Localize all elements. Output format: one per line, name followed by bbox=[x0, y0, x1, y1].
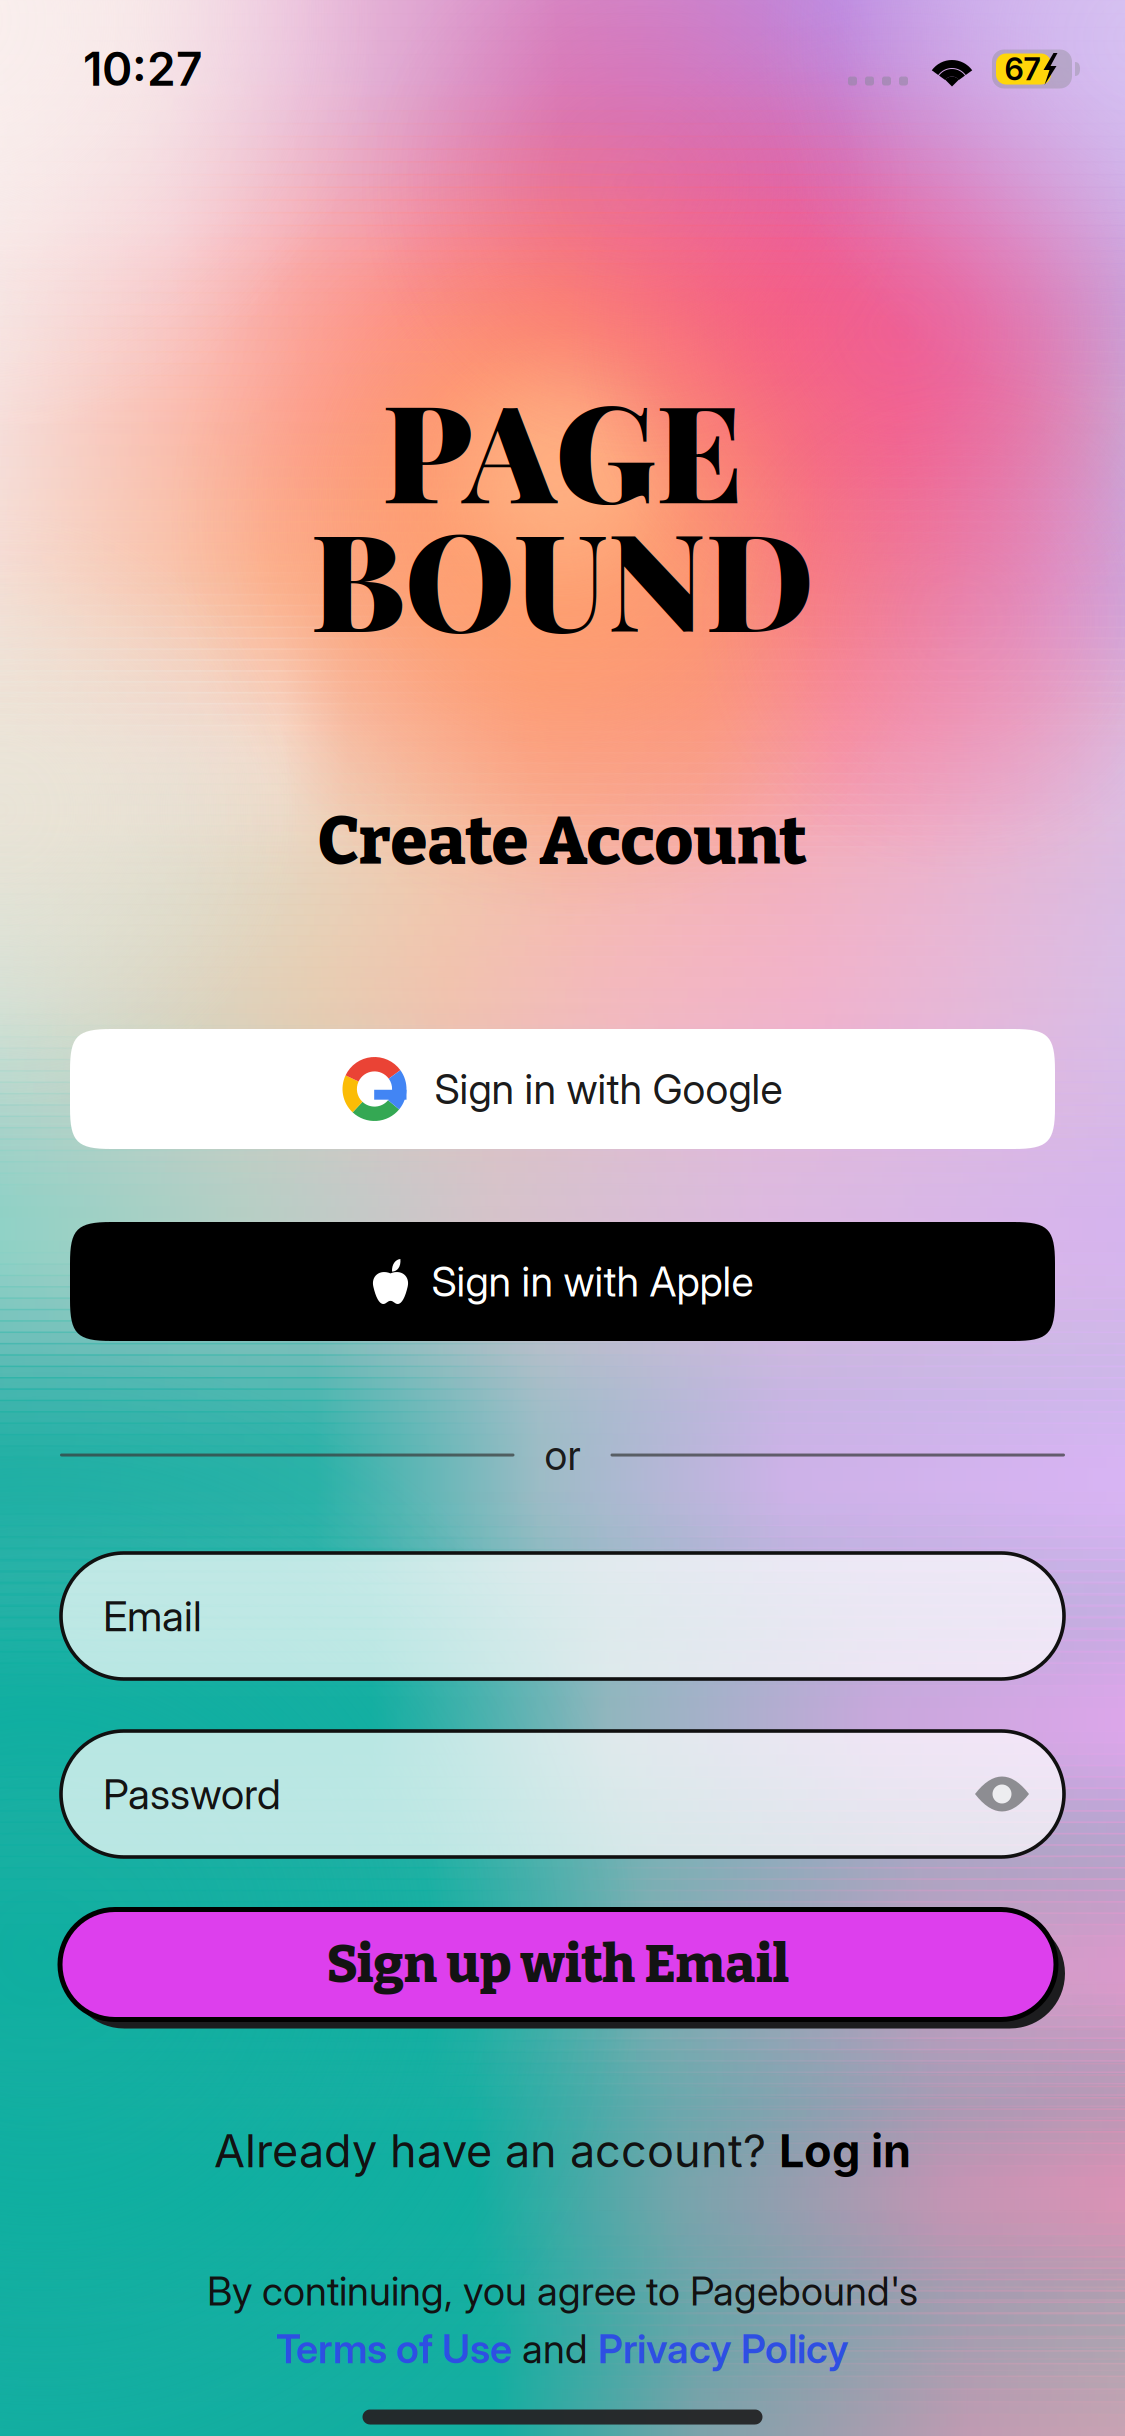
staticText: Sign in with Apple bbox=[431, 1257, 753, 1306]
button[interactable]: Privacy Policy bbox=[598, 2325, 849, 2373]
button[interactable]: Email bbox=[0, 1553, 1125, 1679]
button[interactable]: Sign in with Apple bbox=[70, 1222, 1055, 1341]
button[interactable]: Already have an account? bbox=[174, 2114, 951, 2188]
staticText: BOUND bbox=[310, 487, 814, 666]
staticText: Password bbox=[103, 1769, 281, 1819]
staticText: Sign up with Email bbox=[326, 1933, 789, 1996]
staticText: Terms of Use bbox=[276, 2325, 512, 2373]
staticText: or bbox=[544, 1430, 580, 1480]
staticText: Email bbox=[103, 1591, 202, 1641]
staticText: Privacy Policy bbox=[598, 2325, 849, 2373]
button[interactable]: Terms of Use bbox=[276, 2325, 512, 2373]
button[interactable]: Password bbox=[0, 1731, 1125, 1857]
staticText: PAGE bbox=[382, 358, 743, 537]
staticText: Already have an account? bbox=[214, 2124, 779, 2178]
staticText: By continuing, you agree to Pagebound's bbox=[207, 2267, 918, 2315]
button[interactable]: Sign up with Email bbox=[60, 1909, 1056, 2019]
staticText: Create Account bbox=[317, 801, 807, 881]
staticText: Sign in with Google bbox=[434, 1064, 782, 1114]
staticText: 67 bbox=[1004, 50, 1040, 88]
staticText: and bbox=[512, 2325, 598, 2373]
staticText: 10:27 bbox=[83, 41, 203, 97]
staticText: Log in bbox=[779, 2124, 911, 2178]
button[interactable]: Sign in with Google bbox=[70, 1029, 1055, 1149]
